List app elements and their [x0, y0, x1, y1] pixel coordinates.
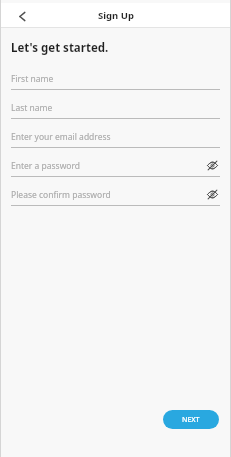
staticText: Enter a password — [11, 160, 81, 172]
staticText: Enter your email address — [11, 131, 111, 143]
staticText: Last name — [11, 102, 53, 114]
button[interactable]: Show password — [205, 187, 220, 202]
button[interactable]: NEXT — [163, 410, 219, 429]
staticText: Sign Up — [98, 9, 134, 22]
staticText: Please confirm password — [11, 189, 111, 201]
button[interactable]: Back — [13, 7, 31, 25]
button[interactable]: Enter your email address — [11, 125, 220, 154]
button[interactable]: Please confirm password — [11, 183, 220, 212]
button[interactable]: Enter a password — [11, 154, 220, 183]
button[interactable]: Show password — [205, 158, 220, 173]
staticText: Let's get started. — [11, 40, 109, 56]
staticText: First name — [11, 73, 54, 85]
button[interactable]: Last name — [11, 96, 220, 125]
button[interactable]: First name — [11, 67, 220, 96]
staticText: NEXT — [182, 415, 200, 425]
